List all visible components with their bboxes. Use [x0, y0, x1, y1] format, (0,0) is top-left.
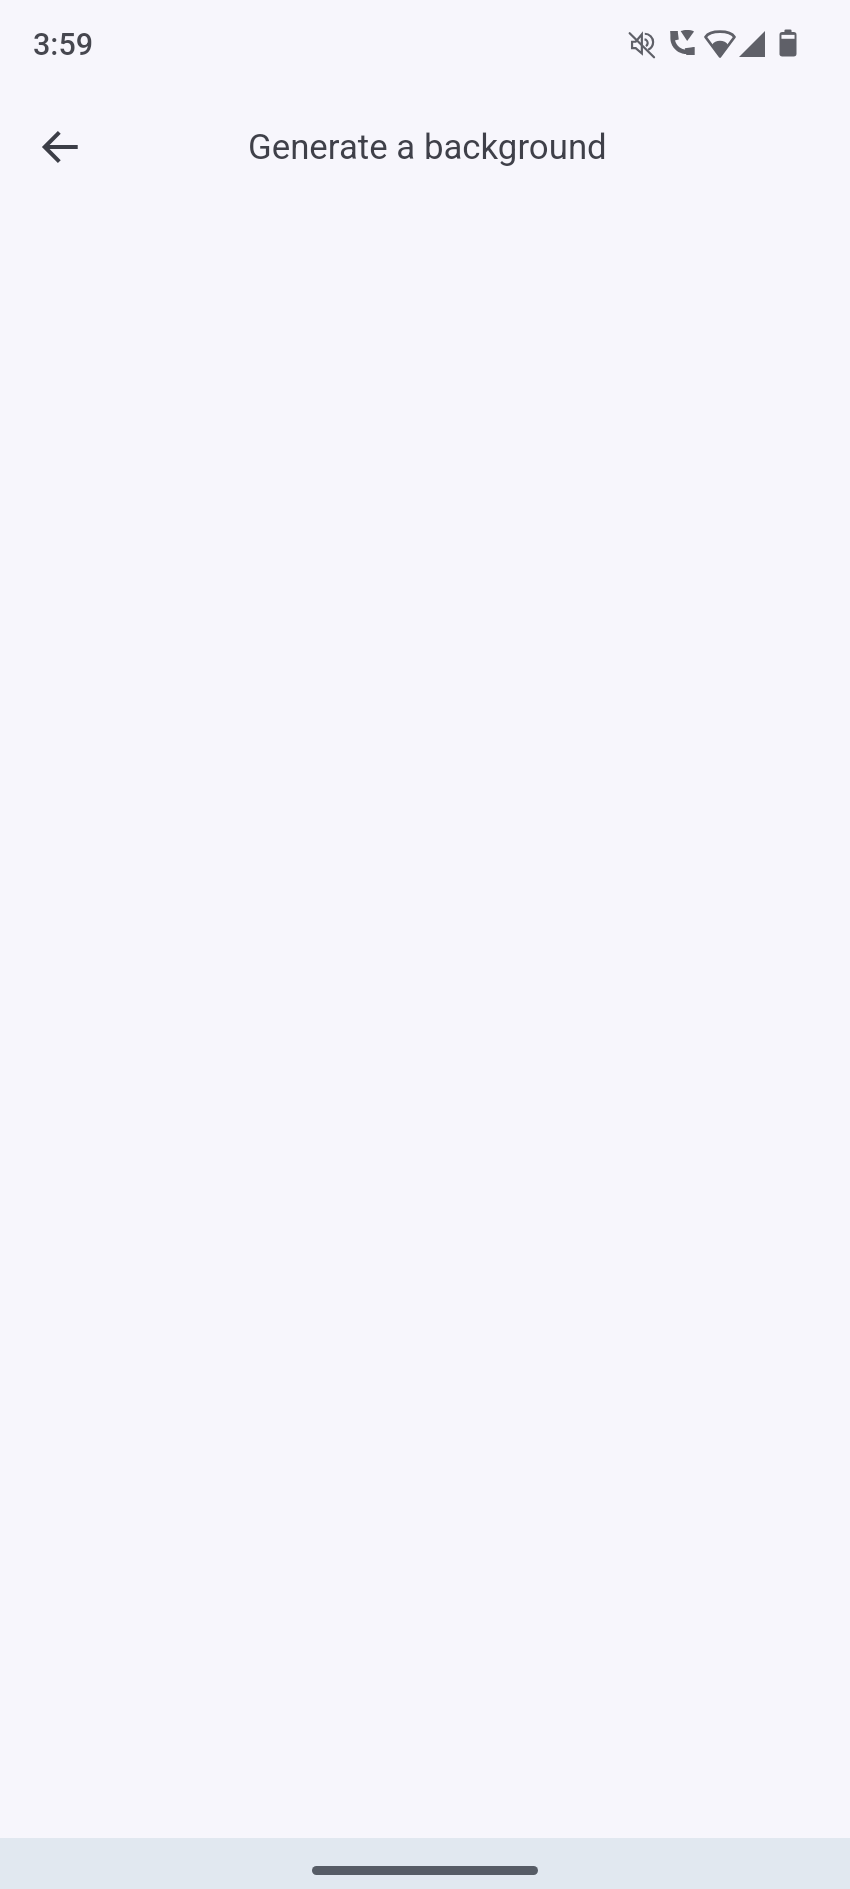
- staticText: Generate a background: [248, 127, 607, 168]
- staticText: 3:59: [33, 27, 94, 63]
- other: Home gesture handle: [312, 1866, 538, 1875]
- button[interactable]: Navigate up: [17, 103, 105, 191]
